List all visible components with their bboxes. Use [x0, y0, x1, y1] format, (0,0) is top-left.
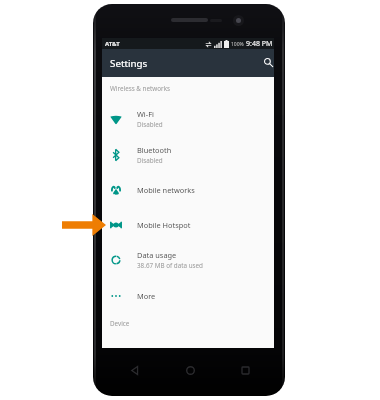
button[interactable]: Home [176, 359, 204, 381]
button[interactable]: Wi-Fi [102, 102, 274, 136]
staticText: Mobile Hotspot [137, 220, 191, 230]
staticText: Disabled [137, 156, 163, 165]
staticText: Settings [110, 57, 148, 70]
staticText: 9:48 PM [246, 39, 273, 49]
staticText: Device [110, 319, 130, 328]
staticText: More [137, 291, 156, 301]
staticText: Disabled [137, 120, 163, 129]
button[interactable]: Recent apps [231, 359, 259, 381]
button[interactable]: Data usage [102, 243, 274, 277]
button[interactable]: More [102, 279, 274, 313]
button[interactable]: Back [121, 359, 149, 381]
staticText: 38.67 MB of data used [137, 261, 203, 270]
staticText: 100% [231, 41, 244, 48]
staticText: Bluetooth [137, 145, 172, 155]
button[interactable]: Search [258, 52, 279, 73]
button[interactable]: Bluetooth [102, 138, 274, 172]
staticText: Data usage [137, 250, 177, 260]
button[interactable]: Mobile networks [102, 173, 274, 207]
staticText: Mobile networks [137, 185, 195, 195]
staticText: Wireless & networks [110, 84, 171, 93]
staticText: AT&T [105, 40, 120, 48]
staticText: Wi-Fi [137, 109, 154, 119]
button[interactable]: Mobile Hotspot [102, 208, 274, 242]
